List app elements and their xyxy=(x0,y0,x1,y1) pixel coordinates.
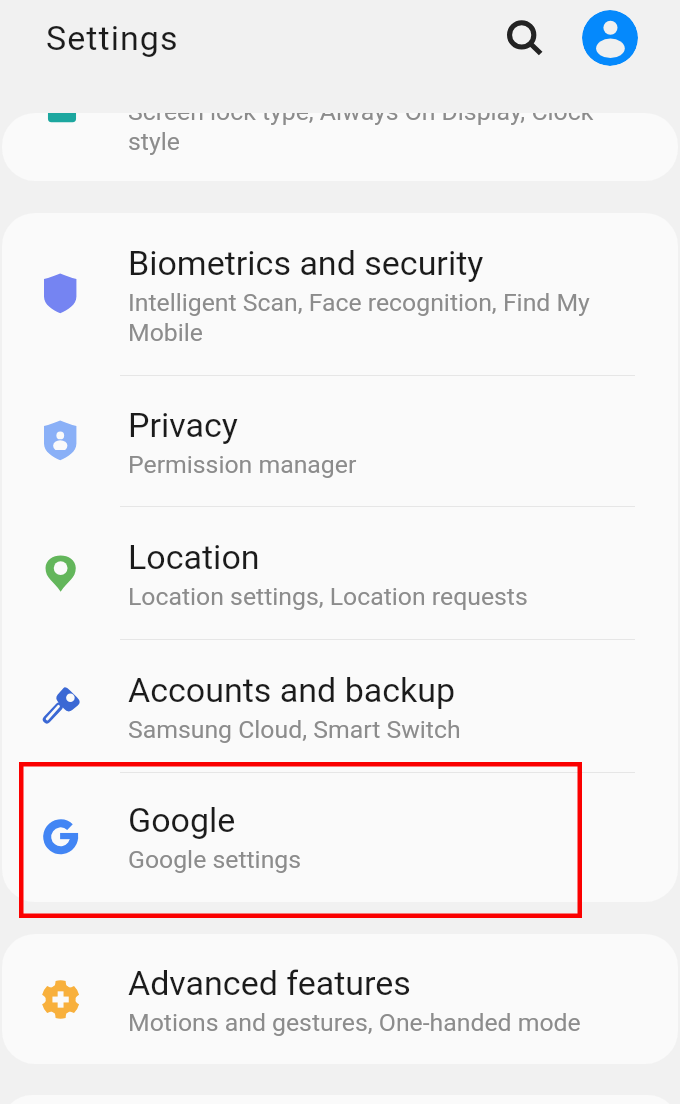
button[interactable]: Biometrics and security xyxy=(2,213,678,375)
staticText: Samsung Cloud, Smart Switch xyxy=(128,714,461,744)
staticText: Accounts and backup xyxy=(128,670,456,710)
button[interactable]: Privacy xyxy=(2,376,678,506)
button[interactable]: Google xyxy=(2,773,678,901)
staticText: Google xyxy=(128,800,236,840)
button[interactable]: Location xyxy=(2,507,678,639)
staticText: Motions and gestures, One-handed mode xyxy=(128,1007,581,1037)
staticText: Google settings xyxy=(128,844,302,874)
staticText: Intelligent Scan, Face recognition, Find… xyxy=(128,287,633,347)
button[interactable]: Advanced features xyxy=(2,934,678,1064)
staticText: Permission manager xyxy=(128,449,357,479)
button[interactable]: Accounts and backup xyxy=(2,640,678,772)
staticText: Location xyxy=(128,537,260,577)
button[interactable]: Screen lock type, Always On Display, Clo… xyxy=(2,113,678,181)
button[interactable]: Account xyxy=(582,10,638,66)
staticText: Biometrics and security xyxy=(128,243,484,283)
staticText: Screen lock type, Always On Display, Clo… xyxy=(128,113,633,156)
staticText: Settings xyxy=(46,18,179,58)
staticText: Location settings, Location requests xyxy=(128,581,528,611)
staticText: Advanced features xyxy=(128,963,411,1003)
button[interactable]: Search xyxy=(496,8,552,64)
staticText: Privacy xyxy=(128,405,238,445)
